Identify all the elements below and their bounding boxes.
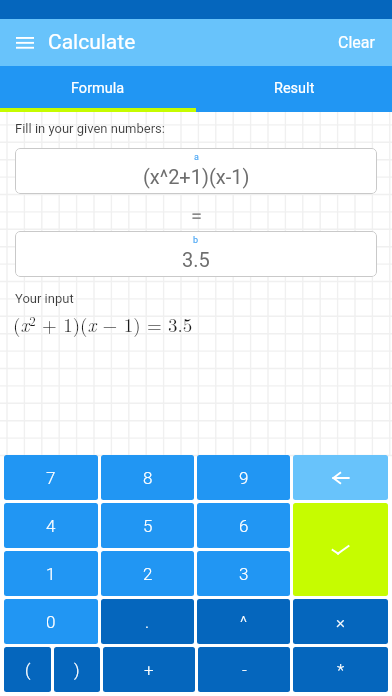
staticText: Calculate	[48, 30, 136, 55]
button[interactable]: ×	[293, 599, 388, 644]
button[interactable]: ^	[197, 599, 290, 644]
staticText: .	[145, 612, 150, 632]
staticText: 1	[46, 564, 56, 584]
staticText: Clear	[338, 33, 375, 52]
button[interactable]: 5	[101, 503, 194, 548]
staticText: b	[193, 235, 199, 246]
button[interactable]: Result	[196, 66, 392, 108]
staticText: (	[25, 660, 31, 680]
staticText: +	[144, 660, 154, 680]
staticText: *	[337, 660, 345, 680]
button[interactable]: 3	[197, 551, 290, 596]
staticText: 6	[239, 516, 249, 536]
button[interactable]: Formula	[0, 66, 196, 108]
button[interactable]: a	[15, 148, 377, 194]
button[interactable]: 0	[4, 599, 98, 644]
button[interactable]: Clear	[322, 19, 392, 66]
button[interactable]: Backspace	[293, 455, 388, 500]
button[interactable]: 6	[197, 503, 290, 548]
button[interactable]: +	[103, 647, 195, 692]
button[interactable]: 7	[4, 455, 98, 500]
button[interactable]: 8	[101, 455, 194, 500]
button[interactable]: b	[15, 231, 377, 277]
button[interactable]: 4	[4, 503, 98, 548]
staticText: Fill in your given numbers:	[15, 121, 165, 136]
staticText: 0	[46, 612, 56, 632]
staticText: )	[74, 660, 80, 680]
staticText: (x2 + 1)(x − 1) = 3.5	[13, 311, 193, 338]
staticText: -	[242, 660, 247, 680]
button[interactable]: -	[198, 647, 290, 692]
staticText: 3.5	[182, 248, 210, 271]
staticText: ×	[336, 612, 345, 632]
staticText: 9	[239, 468, 249, 488]
staticText: 8	[143, 468, 153, 488]
button[interactable]: 2	[101, 551, 194, 596]
button[interactable]: Open navigation menu	[0, 19, 47, 66]
button[interactable]: (	[4, 647, 51, 692]
staticText: ^	[240, 612, 248, 632]
staticText: 3	[239, 564, 249, 584]
staticText: 7	[46, 468, 56, 488]
staticText: Formula	[71, 80, 125, 97]
staticText: 4	[46, 516, 56, 536]
button[interactable]: )	[54, 647, 100, 692]
button[interactable]: Calculate result	[293, 503, 388, 596]
button[interactable]: 1	[4, 551, 98, 596]
staticText: a	[194, 152, 199, 163]
staticText: Result	[274, 80, 315, 97]
staticText: (x^2+1)(x-1)	[143, 165, 250, 188]
button[interactable]: .	[101, 599, 194, 644]
staticText: 5	[143, 516, 153, 536]
staticText: =	[191, 204, 202, 227]
button[interactable]: 9	[197, 455, 290, 500]
staticText: 2	[143, 564, 153, 584]
button[interactable]: *	[293, 647, 388, 692]
staticText: Your input	[15, 291, 74, 306]
